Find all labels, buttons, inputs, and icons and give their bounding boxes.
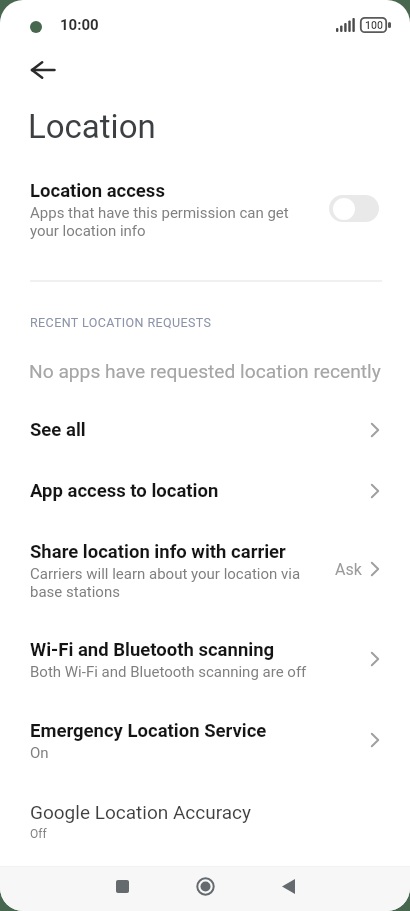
button[interactable] [100,866,144,906]
button[interactable]: App access to location [0,478,410,504]
staticText: Carriers will learn about your location … [30,565,301,601]
staticText: Wi-Fi and Bluetooth scanning [30,639,275,661]
staticText: 10:00 [60,16,99,34]
staticText: Off [30,827,47,841]
staticText: Share location info with carrier [30,541,286,563]
staticText: Emergency Location Service [30,720,267,742]
staticText: On [30,744,49,762]
button[interactable]: Google Location Accuracy [0,799,410,847]
button[interactable]: Emergency Location Service [0,718,410,768]
staticText: 100 [365,19,383,31]
button[interactable]: Share location info with carrier [0,539,410,605]
button[interactable]: Location access [0,172,410,252]
staticText: Google Location Accuracy [30,801,252,823]
staticText: App access to location [30,480,219,502]
button[interactable]: Wi-Fi and Bluetooth scanning [0,637,410,687]
button[interactable] [22,50,66,90]
button[interactable] [329,195,379,222]
button[interactable] [183,866,227,906]
staticText: Both Wi-Fi and Bluetooth scanning are of… [30,663,307,681]
button[interactable] [266,866,310,906]
staticText: Apps that have this permission can get y… [30,204,289,240]
staticText: RECENT LOCATION REQUESTS [30,315,212,330]
staticText: See all [30,419,86,441]
staticText: Location access [30,180,165,202]
button[interactable]: See all [0,417,410,443]
staticText: No apps have requested location recently [29,360,381,383]
staticText: Location [28,107,156,146]
staticText: Ask [335,560,362,579]
